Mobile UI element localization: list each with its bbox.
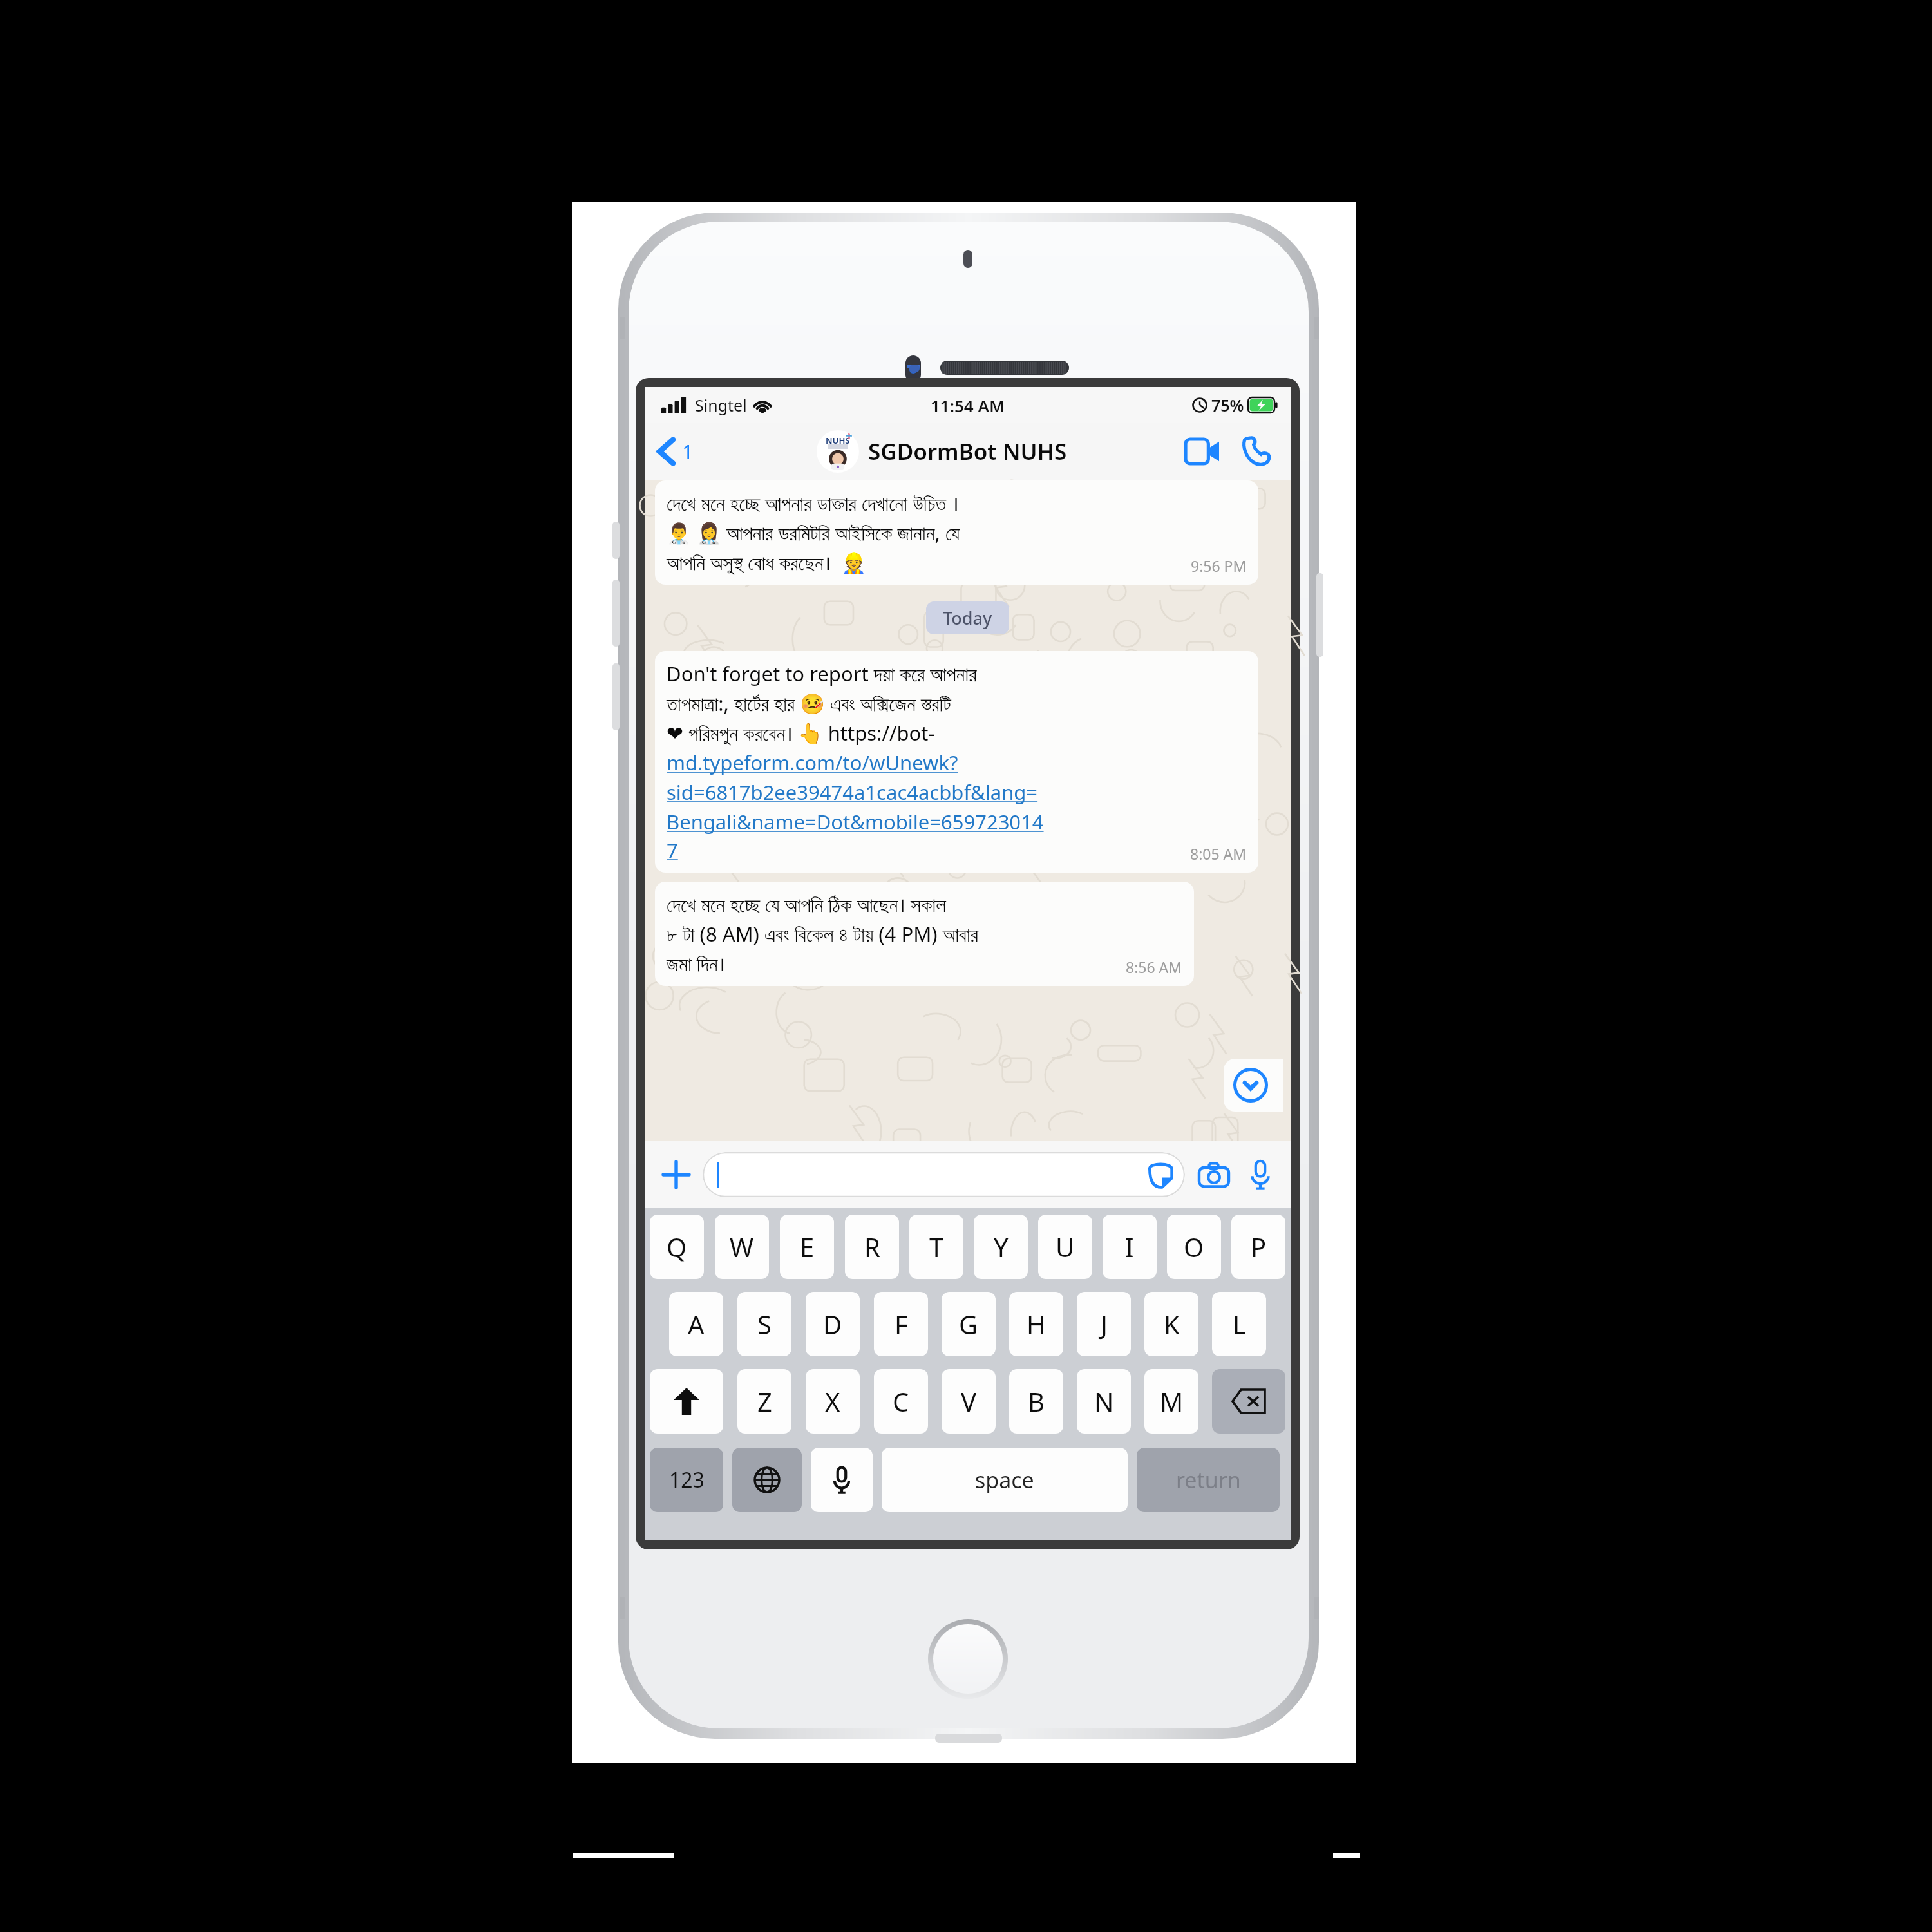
button[interactable]: D (806, 1292, 860, 1356)
staticText: NUHS (826, 435, 850, 446)
staticText: 8:56 AM (1126, 957, 1182, 977)
button[interactable]: Camera (1195, 1156, 1233, 1193)
button[interactable]: R (845, 1215, 899, 1279)
button[interactable]: Change keyboard (732, 1448, 802, 1512)
button[interactable]: O (1167, 1215, 1221, 1279)
button[interactable] (650, 1369, 723, 1434)
staticText: 75% (1211, 394, 1244, 416)
staticText: D (823, 1307, 842, 1341)
staticText: 1 (682, 438, 694, 465)
staticText: Singtel (695, 394, 747, 416)
staticText: আপনি অসুস্থ বোধ করছেন। 👷 (667, 549, 867, 576)
button[interactable]: E (780, 1215, 834, 1279)
staticText: space (975, 1465, 1034, 1495)
button[interactable]: A (669, 1292, 723, 1356)
staticText: Today (943, 606, 992, 630)
button[interactable]: দেখে মনে হচ্ছে আপনার ডাক্তার দেখানো উচিত… (667, 489, 1247, 576)
staticText: md.typeform.com/to/wUnewk? (667, 749, 958, 776)
button[interactable]: T (909, 1215, 963, 1279)
staticText: 8:05 AM (1190, 844, 1247, 864)
button[interactable]: S (737, 1292, 791, 1356)
staticText: ❤️ পরিমপুন করবেন। 👆 https://bot- (667, 719, 935, 746)
staticText: জমা দিন। (667, 950, 726, 977)
staticText: Z (757, 1384, 772, 1419)
staticText: A (688, 1307, 705, 1341)
button[interactable]: N (1077, 1369, 1131, 1434)
staticText: তাপমাত্রা:, হার্টের হার 🤒 এবং অক্সিজেন স… (667, 690, 951, 717)
staticText: return (1176, 1465, 1241, 1495)
button[interactable]: Stickers (1146, 1160, 1175, 1189)
staticText: J (1101, 1307, 1108, 1341)
staticText: I (1125, 1229, 1134, 1264)
staticText: SGDormBot NUHS (868, 436, 1067, 467)
button[interactable]: দেখে মনে হচ্ছে যে আপনি ঠিক আছেন। সকাল (667, 891, 1182, 977)
staticText: W (730, 1229, 754, 1264)
button[interactable]: X (806, 1369, 860, 1434)
button[interactable]: Voice message (1242, 1156, 1279, 1193)
staticText: Bengali&name=Dot&mobile=659723014 (667, 808, 1044, 835)
staticText: G (959, 1307, 978, 1341)
staticText: R (864, 1229, 880, 1264)
staticText: F (895, 1307, 908, 1341)
button[interactable]: NUHS (817, 430, 1067, 473)
button[interactable]: Video call (1182, 431, 1222, 471)
staticText: Q (667, 1229, 687, 1264)
staticText: 9:56 PM (1191, 556, 1247, 576)
staticText: B (1028, 1384, 1045, 1419)
button[interactable]: J (1077, 1292, 1131, 1356)
staticText: দেখে মনে হচ্ছে আপনার ডাক্তার দেখানো উচিত… (667, 489, 959, 516)
button[interactable]: H (1009, 1292, 1063, 1356)
button[interactable]: K (1144, 1292, 1198, 1356)
staticText: E (800, 1229, 815, 1264)
button[interactable]: Dictation (811, 1448, 873, 1512)
staticText: P (1251, 1229, 1267, 1264)
button[interactable]: F (874, 1292, 928, 1356)
button[interactable]: V (942, 1369, 996, 1434)
button[interactable]: Voice call (1236, 431, 1276, 471)
staticText: M (1160, 1384, 1184, 1419)
button[interactable]: Attach (656, 1155, 696, 1195)
button[interactable]: Q (650, 1215, 704, 1279)
button[interactable]: Scroll to bottom (1224, 1059, 1283, 1112)
staticText: sid=6817b2ee39474a1cac4acbbf&lang= (667, 779, 1038, 806)
staticText: 7 (667, 837, 678, 864)
staticText: C (893, 1384, 909, 1419)
button[interactable]: space (882, 1448, 1128, 1512)
button[interactable]: 123 (650, 1448, 723, 1512)
staticText: Don't forget to report দয়া করে আপনার (667, 660, 977, 687)
staticText: 11:54 AM (931, 394, 1005, 417)
staticText: U (1056, 1229, 1075, 1264)
staticText: L (1233, 1307, 1246, 1341)
button[interactable]: W (715, 1215, 769, 1279)
button[interactable]: B (1009, 1369, 1063, 1434)
button[interactable]: G (942, 1292, 996, 1356)
button[interactable]: M (1144, 1369, 1198, 1434)
button[interactable]: Y (974, 1215, 1028, 1279)
staticText: দেখে মনে হচ্ছে যে আপনি ঠিক আছেন। সকাল (667, 891, 947, 918)
button[interactable]: P (1231, 1215, 1285, 1279)
button[interactable]: U (1038, 1215, 1092, 1279)
button[interactable]: L (1212, 1292, 1266, 1356)
staticText: N (1094, 1384, 1114, 1419)
staticText: X (825, 1384, 840, 1419)
button[interactable]: I (1103, 1215, 1157, 1279)
button[interactable]: C (874, 1369, 928, 1434)
button[interactable]: Back (655, 434, 694, 469)
staticText: T (929, 1229, 944, 1264)
staticText: 123 (669, 1466, 705, 1494)
staticText: O (1184, 1229, 1204, 1264)
button[interactable]: Z (737, 1369, 791, 1434)
other: Back (655, 434, 678, 469)
staticText: V (961, 1384, 976, 1419)
button[interactable]: Stickers (703, 1152, 1185, 1197)
button[interactable]: return (1137, 1448, 1280, 1512)
staticText: H (1027, 1307, 1046, 1341)
staticText: ৮ টা (8 AM) এবং বিকেল ৪ টায় (4 PM) আবার (667, 920, 979, 947)
staticText: S (757, 1307, 772, 1341)
button[interactable]: Backspace (1212, 1369, 1285, 1434)
staticText: Y (994, 1229, 1009, 1264)
button[interactable]: Don't forget to report দয়া করে আপনার (667, 660, 1247, 864)
staticText: 👨‍⚕️ 👩‍⚕️ আপনার ডরমিটরি আইসিকে জানান, যে (667, 519, 960, 546)
staticText: K (1164, 1307, 1180, 1341)
